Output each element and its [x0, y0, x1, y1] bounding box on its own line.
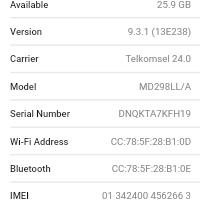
- button[interactable]: Wi-Fi Address: [0, 127, 200, 154]
- staticText: 01 342400 456266 3: [102, 190, 191, 200]
- staticText: CC:78:5F:28:B1:0D: [110, 136, 191, 147]
- staticText: Wi-Fi Address: [10, 136, 69, 147]
- staticText: 9.3.1 (13E238): [127, 26, 191, 37]
- button[interactable]: IMEI: [0, 181, 200, 200]
- staticText: Serial Number: [10, 108, 70, 119]
- button[interactable]: Serial Number: [0, 99, 200, 126]
- button[interactable]: Version: [0, 17, 200, 44]
- button[interactable]: Carrier: [0, 44, 200, 71]
- staticText: CC:78:5F:28:B1:0E: [111, 163, 191, 174]
- staticText: MD298LL/A: [139, 81, 191, 92]
- staticText: Telkomsel 24.0: [125, 53, 191, 64]
- button[interactable]: Available: [0, 0, 200, 17]
- staticText: Carrier: [10, 53, 39, 64]
- staticText: Version: [10, 26, 43, 37]
- button[interactable]: Model: [0, 72, 200, 99]
- staticText: DNQKTA7KFH19: [118, 108, 191, 119]
- staticText: 25.9 GB: [157, 0, 191, 10]
- staticText: IMEI: [10, 190, 29, 200]
- staticText: Bluetooth: [10, 163, 51, 174]
- button[interactable]: Bluetooth: [0, 154, 200, 181]
- staticText: Model: [10, 81, 37, 92]
- staticText: Available: [10, 0, 49, 10]
